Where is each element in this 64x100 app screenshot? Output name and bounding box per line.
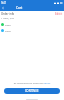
staticText: 9:41 xyxy=(1,1,7,5)
staticText: Order info xyxy=(1,12,15,16)
staticText: Card xyxy=(5,29,11,32)
button[interactable]: Terms xyxy=(44,82,51,85)
staticText: 1 item, $24 xyxy=(1,16,14,19)
staticText: By continuing you accept the xyxy=(13,82,44,85)
button[interactable]: Cash xyxy=(1,22,63,26)
staticText: Cash xyxy=(5,23,11,26)
staticText: CONTINUE xyxy=(25,89,39,93)
button[interactable]: CONTINUE xyxy=(4,88,60,94)
button[interactable]: Card xyxy=(1,28,63,32)
button[interactable]: Back xyxy=(0,5,6,11)
staticText: Cart xyxy=(16,6,23,10)
button[interactable]: Edit it xyxy=(55,12,63,16)
